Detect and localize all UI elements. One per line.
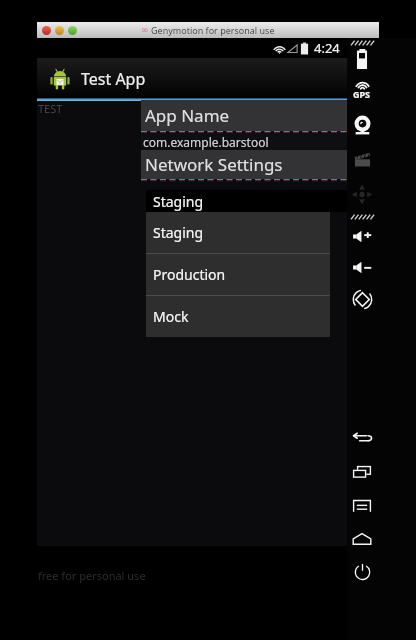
- staticText: App Name: [145, 104, 230, 127]
- button[interactable]: GPS: [351, 81, 373, 100]
- button[interactable]: Recent apps: [347, 459, 377, 485]
- button[interactable]: Back: [347, 426, 377, 450]
- button[interactable]: Record video: [348, 146, 377, 174]
- button[interactable]: Rotate: [347, 284, 378, 315]
- staticText: com.example.barstool: [143, 134, 269, 150]
- button[interactable]: Menu: [347, 493, 377, 519]
- staticText: Test App: [81, 68, 146, 90]
- button[interactable]: Production: [146, 254, 330, 295]
- button[interactable]: Home: [347, 527, 377, 551]
- staticText: ∞: [141, 25, 149, 35]
- staticText: GPS: [353, 88, 371, 100]
- button[interactable]: Mock: [146, 296, 330, 337]
- button[interactable]: Power: [348, 557, 377, 586]
- staticText: Staging: [153, 223, 204, 242]
- button[interactable]: Battery: [351, 44, 373, 74]
- staticText: Genymotion for personal use: [151, 24, 275, 36]
- button[interactable]: Volume down: [347, 254, 378, 281]
- staticText: Network Settings: [145, 153, 283, 176]
- button[interactable]: D-pad: [346, 179, 378, 210]
- button[interactable]: Staging: [146, 212, 330, 253]
- button[interactable]: Volume up: [347, 223, 378, 250]
- staticText: Production: [153, 265, 226, 284]
- staticText: Staging: [153, 192, 204, 211]
- staticText: TEST: [38, 101, 63, 116]
- button[interactable]: Staging: [146, 190, 347, 212]
- button[interactable]: Camera: [348, 111, 377, 140]
- button[interactable]: Network Settings: [141, 150, 347, 179]
- button[interactable]: App Name: [141, 100, 347, 131]
- staticText: free for personal use: [38, 568, 146, 583]
- staticText: 4:24: [314, 39, 340, 57]
- staticText: Mock: [153, 307, 189, 326]
